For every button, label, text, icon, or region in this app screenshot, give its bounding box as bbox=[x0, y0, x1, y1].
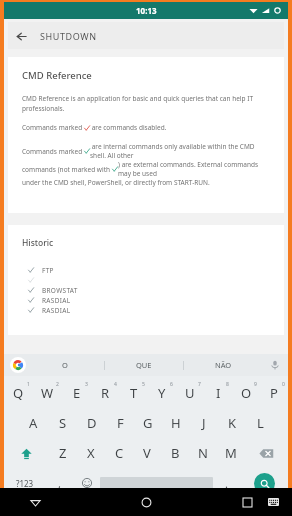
button[interactable]: Search bbox=[240, 468, 288, 498]
button[interactable]: Shift bbox=[4, 438, 48, 468]
button[interactable]: X bbox=[77, 438, 105, 468]
button[interactable]: B bbox=[161, 438, 189, 468]
staticText: 4 bbox=[114, 381, 117, 388]
staticText: K bbox=[228, 414, 237, 432]
staticText: 7 bbox=[198, 381, 201, 388]
staticText: E bbox=[73, 384, 81, 402]
staticText: Q bbox=[13, 384, 24, 402]
staticText: ) are external commands. External comman… bbox=[118, 160, 270, 178]
staticText: , bbox=[58, 476, 61, 491]
button[interactable]: G bbox=[134, 408, 162, 438]
button[interactable]: N bbox=[189, 438, 217, 468]
staticText: CMD Reference bbox=[22, 69, 92, 82]
button[interactable]: Z bbox=[48, 438, 77, 468]
button[interactable]: Back bbox=[0, 488, 70, 516]
button[interactable]: A bbox=[19, 408, 48, 438]
button[interactable]: Voice input bbox=[262, 354, 288, 376]
staticText: V bbox=[143, 444, 151, 462]
staticText: P bbox=[270, 384, 278, 402]
staticText: 3 bbox=[85, 381, 88, 388]
button[interactable]: , bbox=[46, 468, 73, 498]
button[interactable]: Space bbox=[100, 477, 213, 489]
staticText: D bbox=[87, 414, 97, 432]
button[interactable]: H bbox=[162, 408, 190, 438]
staticText: H bbox=[171, 414, 181, 432]
button[interactable]: W bbox=[33, 378, 62, 408]
staticText: C bbox=[115, 444, 124, 462]
button[interactable]: I bbox=[204, 378, 232, 408]
button[interactable]: RASDIAL bbox=[22, 305, 270, 315]
staticText: R bbox=[101, 384, 110, 402]
staticText: CMD Reference is an application for basi… bbox=[22, 94, 270, 113]
button[interactable]: O bbox=[232, 378, 260, 408]
staticText: O bbox=[241, 384, 252, 402]
staticText: commands (not marked with bbox=[22, 165, 112, 174]
staticText: G bbox=[143, 414, 153, 432]
button[interactable]: E bbox=[62, 378, 91, 408]
button[interactable]: J bbox=[190, 408, 218, 438]
staticText: N bbox=[198, 444, 208, 462]
button[interactable]: Emoji bbox=[73, 468, 100, 498]
staticText: Commands marked bbox=[22, 123, 84, 132]
button[interactable]: F bbox=[106, 408, 134, 438]
staticText: are internal commands only available wit… bbox=[90, 142, 270, 160]
button[interactable]: Q bbox=[4, 378, 33, 408]
staticText: 9 bbox=[254, 381, 257, 388]
staticText: Y bbox=[158, 384, 166, 402]
button[interactable]: K bbox=[218, 408, 246, 438]
button[interactable]: Home bbox=[116, 488, 176, 516]
staticText: U bbox=[185, 384, 195, 402]
staticText: are commands disabled. bbox=[90, 123, 167, 132]
button[interactable]: FTP bbox=[22, 265, 270, 275]
staticText: 5 bbox=[142, 381, 145, 388]
staticText: QUE bbox=[136, 360, 152, 370]
button[interactable]: Recent apps bbox=[234, 489, 260, 515]
staticText: BROWSTAT bbox=[42, 286, 78, 295]
button[interactable]: L bbox=[246, 408, 274, 438]
button[interactable]: S bbox=[48, 408, 77, 438]
staticText: Z bbox=[59, 444, 67, 462]
staticText: T bbox=[130, 384, 138, 402]
staticText: 2 bbox=[56, 381, 59, 388]
button[interactable]: BROWSTAT bbox=[22, 285, 270, 295]
button[interactable]: QUE bbox=[105, 354, 183, 376]
staticText: . bbox=[225, 476, 228, 491]
staticText: X bbox=[87, 444, 95, 462]
staticText: J bbox=[202, 414, 206, 432]
staticText: Historic bbox=[22, 237, 54, 249]
button[interactable]: P bbox=[260, 378, 288, 408]
button[interactable]: U bbox=[176, 378, 204, 408]
button[interactable]: RASDIAL bbox=[22, 295, 270, 305]
button[interactable]: Delete bbox=[245, 438, 288, 468]
staticText: 10:13 bbox=[136, 5, 157, 16]
staticText: L bbox=[257, 414, 264, 432]
staticText: A bbox=[29, 414, 38, 432]
staticText: S bbox=[59, 414, 67, 432]
staticText: NÃO bbox=[215, 360, 232, 370]
button[interactable]: T bbox=[120, 378, 148, 408]
staticText: ?123 bbox=[16, 478, 34, 489]
staticText: O bbox=[62, 360, 68, 370]
staticText: RASDIAL bbox=[42, 296, 71, 305]
button[interactable]: Back bbox=[8, 23, 34, 49]
button[interactable]: M bbox=[217, 438, 245, 468]
staticText: B bbox=[171, 444, 180, 462]
button[interactable]: . bbox=[213, 468, 240, 498]
button[interactable]: D bbox=[77, 408, 106, 438]
staticText: 0 bbox=[282, 381, 285, 388]
button[interactable]: NÃO bbox=[184, 354, 262, 376]
button[interactable]: Google bbox=[10, 357, 26, 373]
staticText: FTP bbox=[42, 266, 54, 275]
staticText: SHUTDOWN bbox=[40, 30, 97, 42]
button[interactable]: C bbox=[105, 438, 133, 468]
staticText: 1 bbox=[27, 381, 30, 388]
button[interactable]: O bbox=[26, 354, 104, 376]
staticText: Commands marked bbox=[22, 147, 84, 156]
button[interactable]: V bbox=[133, 438, 161, 468]
button[interactable]: ?123 bbox=[4, 468, 46, 498]
button[interactable]: R bbox=[91, 378, 120, 408]
staticText: M bbox=[225, 444, 237, 462]
button[interactable]: Y bbox=[148, 378, 176, 408]
button[interactable]: Switch keyboard bbox=[260, 489, 286, 515]
